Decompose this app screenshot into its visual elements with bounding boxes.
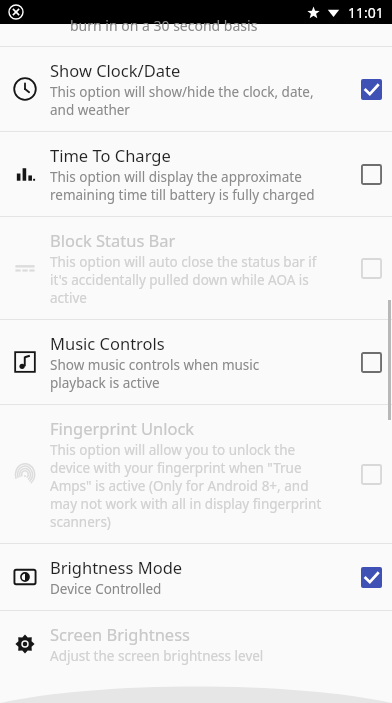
button[interactable]: Screen Brightness [0,611,392,677]
button[interactable]: Time To Charge [0,132,392,216]
button[interactable]: Checked [357,563,385,591]
button[interactable]: Brightness Mode [0,544,392,610]
button[interactable]: Unchecked [357,254,385,282]
button[interactable]: Block Status Bar [0,217,392,319]
staticText: Screen Brightness [50,623,190,645]
button[interactable]: Unchecked [357,348,385,376]
button[interactable]: Music Controls [0,320,392,404]
button[interactable]: Unchecked [357,160,385,188]
button[interactable]: Fingerprint Unlock [0,405,392,543]
staticText: Brightness Mode [50,556,183,578]
staticText: This option will show/hide the clock, da… [50,83,314,119]
staticText: Block Status Bar [50,229,176,251]
staticText: Show Clock/Date [50,59,181,81]
staticText: Device Controlled [50,580,162,598]
staticText: This option will display the approximate… [50,168,315,204]
staticText: This option will allow you to unlock the… [50,441,322,531]
button[interactable]: Checked [357,75,385,103]
button[interactable]: Show Clock/Date [0,47,392,131]
staticText: Show music controls when music playback … [50,356,260,392]
staticText: This option will auto close the status b… [50,253,317,307]
staticText: burn in on a 30 second basis [70,16,258,35]
staticText: Music Controls [50,332,165,354]
button[interactable]: Unchecked [357,460,385,488]
staticText: 11:01 [348,3,384,22]
staticText: Adjust the screen brightness level [50,647,264,665]
staticText: Time To Charge [50,144,171,166]
staticText: Fingerprint Unlock [50,417,195,439]
